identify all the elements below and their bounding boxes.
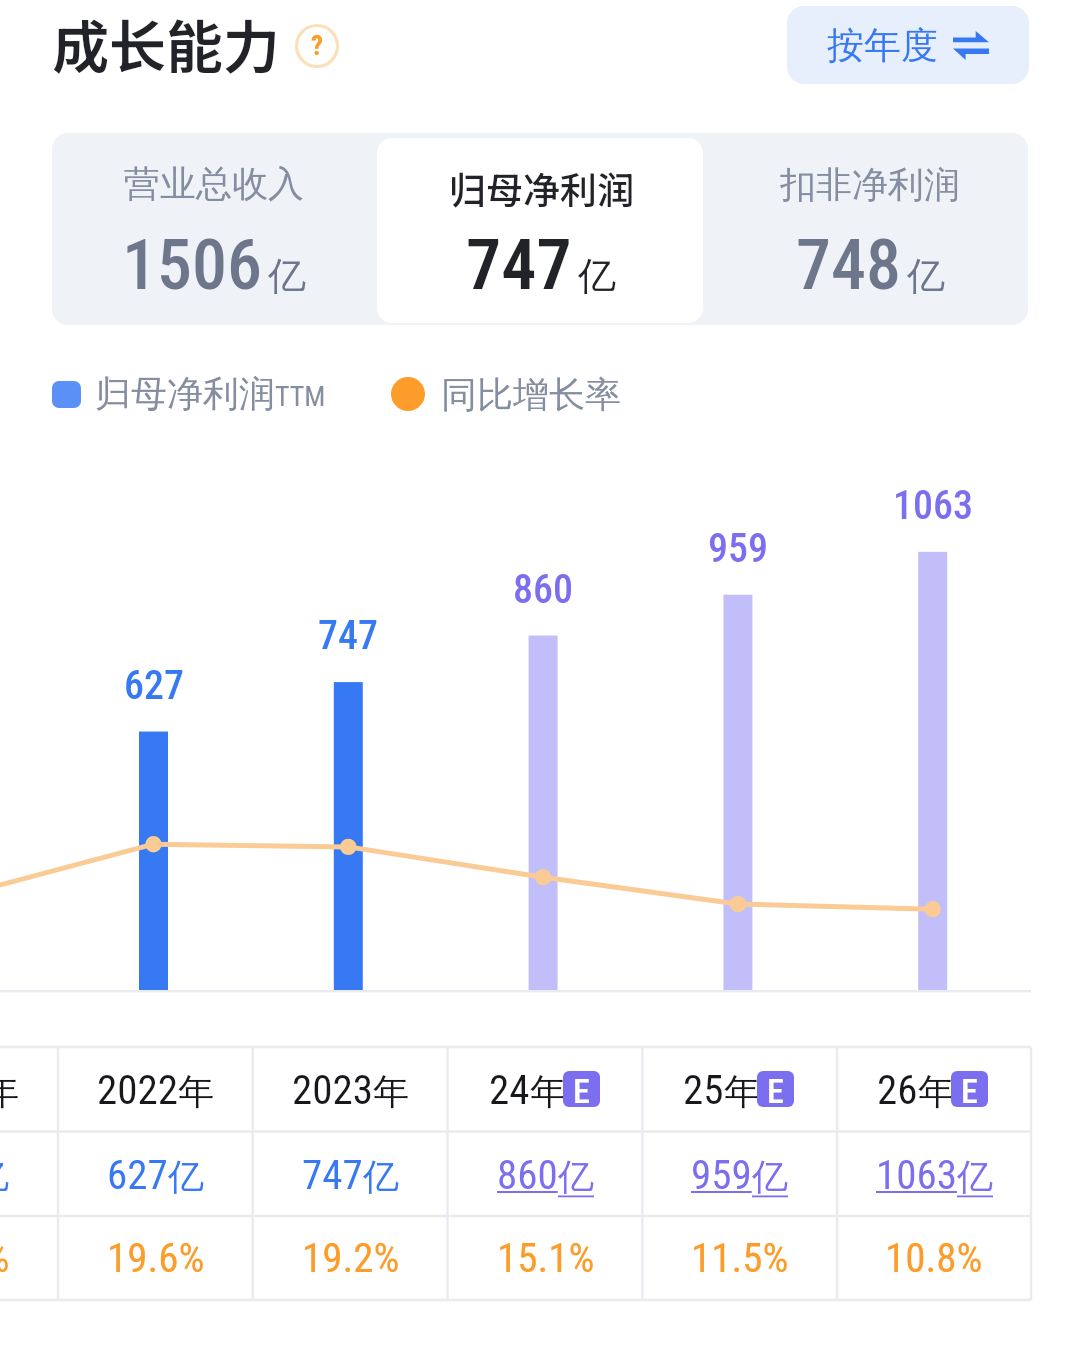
staticText: 2023 [292, 1066, 373, 1114]
staticText: E [573, 1071, 590, 1107]
staticText: 19.2% [302, 1234, 400, 1282]
staticText: 亿 [558, 1154, 594, 1199]
staticText: 10.8% [885, 1234, 983, 1282]
staticText: 年 [530, 1069, 566, 1114]
button[interactable]: 525 [0, 1132, 58, 1217]
button[interactable]: 25 [642, 1047, 837, 1132]
staticText: 扣非净利润 [780, 162, 960, 207]
staticText: 年 [178, 1069, 214, 1114]
staticText: 1063 [876, 1151, 957, 1199]
button[interactable]: 2023 [253, 1047, 448, 1132]
staticText: 19.6% [107, 1234, 205, 1282]
staticText: 25 [683, 1066, 724, 1114]
staticText: 627 [124, 662, 184, 709]
button[interactable]: 19.6% [58, 1216, 253, 1300]
button[interactable]: 627 [58, 1132, 253, 1217]
staticText: 1063 [893, 482, 973, 529]
staticText: 860 [513, 566, 573, 613]
button[interactable]: 帮助 [295, 24, 339, 68]
staticText: 18.1% [0, 1234, 10, 1282]
staticText: 按年度 [827, 22, 938, 69]
staticText: 亿 [268, 252, 306, 300]
staticText: 2022 [97, 1066, 178, 1114]
button[interactable]: 747 [253, 1132, 448, 1217]
staticText: 年 [373, 1069, 409, 1114]
button[interactable] [377, 138, 703, 323]
button[interactable]: 11.5% [642, 1216, 837, 1300]
staticText: 11.5% [691, 1234, 789, 1282]
button[interactable]: 24 [448, 1047, 643, 1132]
staticText: E [961, 1071, 978, 1107]
button[interactable] [52, 133, 377, 325]
staticText: 亿 [752, 1154, 788, 1199]
staticText: 亿 [363, 1154, 399, 1199]
staticText: 亿 [578, 252, 616, 300]
staticText: 归母净利润 [95, 371, 275, 416]
staticText: 亿 [0, 1154, 9, 1199]
staticText: 24 [489, 1066, 530, 1114]
staticText: 627 [107, 1151, 168, 1199]
staticText: 营业总收入 [124, 161, 304, 206]
staticText: 748 [796, 224, 901, 306]
staticText: 747 [466, 224, 572, 306]
staticText: 959 [708, 525, 768, 572]
button[interactable]: 26 [837, 1047, 1031, 1132]
staticText: 1506 [122, 224, 262, 306]
staticText: 26 [877, 1066, 918, 1114]
staticText: 747 [302, 1151, 363, 1199]
staticText: 747 [318, 612, 378, 659]
button[interactable]: 按年度 [787, 6, 1029, 84]
button[interactable]: 10.8% [837, 1216, 1031, 1300]
staticText: 归母净利润 [449, 161, 634, 215]
staticText: 959 [691, 1151, 752, 1199]
staticText: 年 [918, 1069, 954, 1114]
button[interactable]: 860 [448, 1132, 643, 1217]
staticText: 亿 [957, 1154, 993, 1199]
button[interactable]: 2022 [58, 1047, 253, 1132]
staticText: 860 [497, 1151, 558, 1199]
button[interactable]: 1063 [837, 1132, 1031, 1217]
staticText: 亿 [907, 252, 945, 300]
staticText: 亿 [168, 1154, 204, 1199]
staticText: TTM [275, 380, 326, 413]
staticText: 15.1% [497, 1234, 595, 1282]
staticText: 年 [724, 1069, 760, 1114]
staticText: 成长能力 [52, 2, 280, 85]
button[interactable] [703, 133, 1028, 325]
staticText: ? [311, 30, 324, 62]
button[interactable]: 959 [642, 1132, 837, 1217]
staticText: 年 [0, 1069, 19, 1114]
button[interactable]: 19.2% [253, 1216, 448, 1300]
button[interactable]: 2021 [0, 1047, 58, 1132]
staticText: 同比增长率 [441, 372, 621, 417]
button[interactable]: 15.1% [448, 1216, 643, 1300]
button[interactable]: 18.1% [0, 1216, 58, 1300]
staticText: E [767, 1071, 784, 1107]
